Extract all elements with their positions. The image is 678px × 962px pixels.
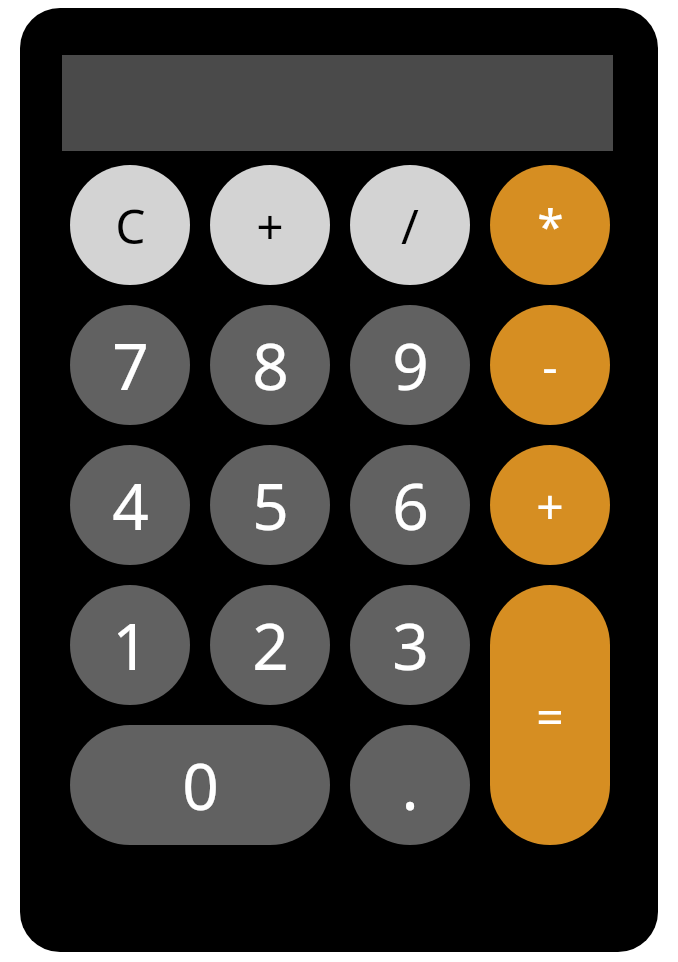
- staticText: 6: [392, 462, 429, 549]
- button[interactable]: Two: [210, 585, 330, 705]
- button[interactable]: Equals: [490, 585, 610, 845]
- button[interactable]: Multiply: [490, 165, 610, 285]
- button[interactable]: Three: [350, 585, 470, 705]
- staticText: /: [401, 193, 419, 258]
- staticText: +: [256, 193, 284, 258]
- staticText: -: [542, 333, 558, 398]
- staticText: 8: [252, 322, 289, 409]
- button[interactable]: Clear: [70, 165, 190, 285]
- button[interactable]: Decimal point: [350, 725, 470, 845]
- button[interactable]: Four: [70, 445, 190, 565]
- button[interactable]: Plus: [210, 165, 330, 285]
- staticText: 5: [252, 462, 289, 549]
- button[interactable]: Seven: [70, 305, 190, 425]
- button[interactable]: One: [70, 585, 190, 705]
- button[interactable]: Add: [490, 445, 610, 565]
- staticText: 0: [182, 742, 219, 829]
- staticText: 1: [112, 602, 149, 689]
- button[interactable]: Eight: [210, 305, 330, 425]
- staticText: 9: [392, 322, 429, 409]
- button[interactable]: Divide: [350, 165, 470, 285]
- staticText: =: [536, 683, 564, 748]
- button[interactable]: Minus: [490, 305, 610, 425]
- button[interactable]: Six: [350, 445, 470, 565]
- staticText: .: [401, 742, 419, 829]
- staticText: *: [537, 193, 564, 258]
- staticText: +: [536, 473, 564, 538]
- button[interactable]: Nine: [350, 305, 470, 425]
- staticText: 4: [112, 462, 149, 549]
- staticText: 7: [112, 322, 149, 409]
- button[interactable]: Five: [210, 445, 330, 565]
- button[interactable]: Zero: [70, 725, 330, 845]
- staticText: 2: [252, 602, 289, 689]
- staticText: 3: [392, 602, 429, 689]
- staticText: C: [115, 193, 146, 258]
